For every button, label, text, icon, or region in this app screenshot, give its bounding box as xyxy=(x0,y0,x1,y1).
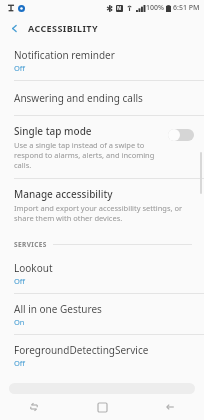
staticText: Off xyxy=(14,63,26,73)
staticText: 100% xyxy=(146,3,164,13)
staticText: Answering and ending calls xyxy=(14,91,143,105)
button[interactable]: Single tap mode xyxy=(0,116,204,178)
button[interactable]: ForegroundDetectingService xyxy=(0,335,204,375)
button[interactable]: Notification reminder xyxy=(0,40,204,80)
staticText: SERVICES xyxy=(14,240,47,249)
staticText: Notification reminder xyxy=(14,48,115,62)
button[interactable]: Back xyxy=(0,16,28,40)
staticText: Off xyxy=(14,358,26,368)
staticText: Import and export your accessibility set… xyxy=(14,203,190,223)
staticText: All in one Gestures xyxy=(14,302,102,316)
staticText: On xyxy=(14,317,25,327)
button[interactable]: Back xyxy=(136,394,204,420)
staticText: N xyxy=(117,5,122,12)
button[interactable]: Answering and ending calls xyxy=(0,81,204,115)
staticText: Single tap mode xyxy=(14,124,92,138)
staticText: Off xyxy=(14,276,26,286)
staticText: ACCESSIBILITY xyxy=(28,22,98,34)
button[interactable]: Home xyxy=(68,394,136,420)
button[interactable]: All in one Gestures xyxy=(0,294,204,334)
staticText: ForegroundDetectingService xyxy=(14,343,149,357)
button[interactable]: Lookout xyxy=(0,253,204,293)
staticText: 6:51 PM xyxy=(173,3,200,13)
button[interactable]: Recents xyxy=(0,394,68,420)
staticText: Use a single tap instead of a swipe to r… xyxy=(14,140,160,170)
staticText: Manage accessibility xyxy=(14,187,113,201)
staticText: Lookout xyxy=(14,261,53,275)
button[interactable]: Single tap mode toggle xyxy=(168,128,194,142)
button[interactable]: Manage accessibility xyxy=(0,179,204,231)
